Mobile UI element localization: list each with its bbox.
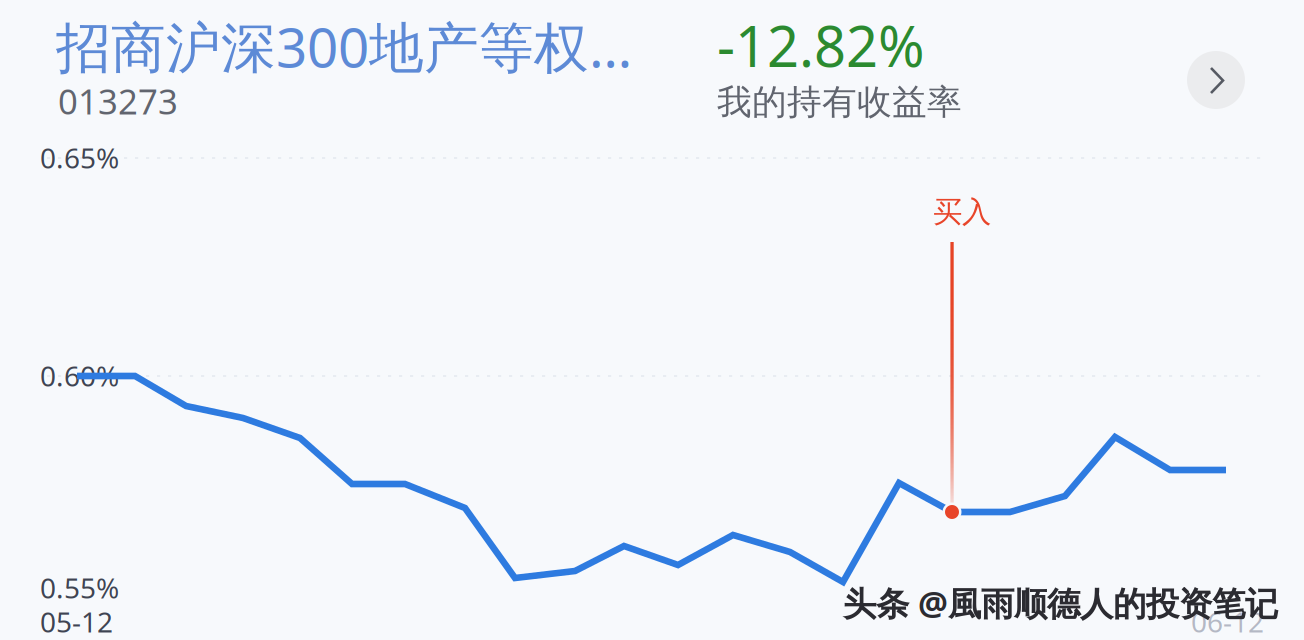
staticText: 013273 [58, 78, 178, 124]
staticText: 头条 @風雨顺德人的投资笔记 [843, 581, 1278, 625]
staticText: 招商沪深300地产等权… [56, 10, 632, 83]
staticText: 0.60% [40, 357, 119, 394]
staticText: 我的持有收益率 [717, 81, 962, 124]
staticText: 06-12 [1191, 603, 1264, 640]
staticText: 0.65% [40, 139, 119, 176]
staticText: 0.55% [40, 569, 119, 606]
button[interactable]: Details [1187, 51, 1245, 109]
staticText: 买入 [933, 194, 991, 230]
staticText: -12.82% [717, 8, 925, 82]
staticText: 05-12 [40, 603, 113, 640]
